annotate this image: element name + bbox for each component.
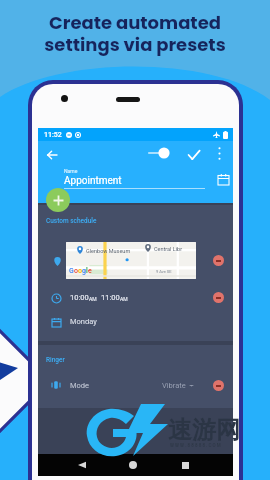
- staticText: Custom schedule: [46, 217, 97, 225]
- button[interactable]: Add action: [46, 188, 70, 212]
- staticText: Monday: [70, 317, 97, 326]
- button[interactable]: Map location: [66, 242, 196, 279]
- staticText: Create automated settings via presets: [44, 10, 226, 57]
- button[interactable]: Remove: [213, 255, 224, 266]
- staticText: G: [69, 267, 74, 275]
- staticText: Ringer: [46, 356, 65, 364]
- button[interactable]: Location: [52, 256, 62, 266]
- staticText: 9 Ave SE: [156, 269, 172, 274]
- staticText: Vibrate: [162, 381, 186, 390]
- staticText: Glenbow Museum: [86, 248, 131, 254]
- button[interactable]: More options: [210, 144, 228, 162]
- staticText: o: [74, 267, 78, 275]
- staticText: 11:00: [101, 293, 120, 302]
- button[interactable]: Enable preset: [144, 145, 168, 161]
- staticText: g: [82, 267, 86, 275]
- staticText: AM: [120, 296, 128, 302]
- staticText: Mode: [70, 381, 90, 390]
- button[interactable]: Save: [185, 146, 203, 164]
- button[interactable]: Recent apps: [175, 455, 195, 475]
- button[interactable]: Pick from calendar: [214, 170, 232, 188]
- staticText: 10:00: [70, 293, 89, 302]
- staticText: Appointment: [64, 175, 122, 187]
- staticText: 速游网: [168, 415, 240, 445]
- button[interactable]: Remove: [213, 380, 224, 391]
- button[interactable]: Back: [43, 146, 61, 164]
- staticText: 11:52: [44, 131, 62, 139]
- button[interactable]: Home: [123, 455, 143, 475]
- staticText: Name: [64, 168, 78, 174]
- button[interactable]: Remove: [213, 292, 224, 303]
- staticText: Central Libr: [154, 246, 183, 252]
- staticText: W W W . 8 8 8 8 8 . C O M: [170, 443, 221, 448]
- button[interactable]: Back: [72, 455, 92, 475]
- staticText: e: [88, 267, 92, 275]
- staticText: o: [78, 267, 82, 275]
- staticText: l: [86, 267, 88, 275]
- staticText: AM: [89, 296, 97, 302]
